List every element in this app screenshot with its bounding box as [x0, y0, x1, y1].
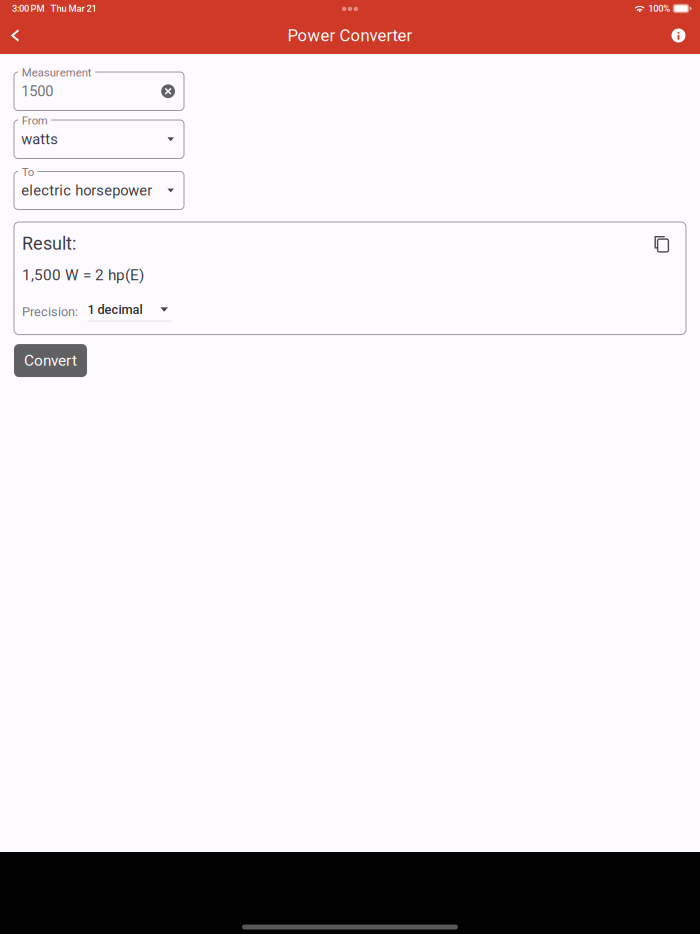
button[interactable]: Back — [0, 17, 30, 54]
staticText: Thu Mar 21 — [51, 3, 97, 14]
button[interactable]: Information — [664, 17, 693, 54]
button[interactable]: Convert — [14, 344, 87, 377]
staticText: PM — [31, 3, 45, 14]
staticText: Result: — [22, 233, 76, 254]
staticText: Convert — [24, 352, 77, 370]
staticText: 1500 — [21, 83, 53, 100]
staticText: 100% — [648, 3, 670, 14]
staticText: 1,500 W = 2 hp(E) — [22, 266, 144, 284]
staticText: 1 decimal — [87, 302, 142, 317]
staticText: To — [22, 166, 34, 179]
staticText: electric horsepower — [21, 182, 152, 199]
button[interactable]: Copy result — [654, 236, 668, 252]
staticText: Precision: — [22, 304, 78, 319]
staticText: Measurement — [22, 66, 92, 79]
staticText: watts — [21, 131, 58, 148]
staticText: 3:00 — [12, 3, 29, 14]
staticText: From — [22, 114, 48, 127]
staticText: Power Converter — [287, 26, 412, 45]
button[interactable]: 1 decimal — [87, 302, 172, 322]
